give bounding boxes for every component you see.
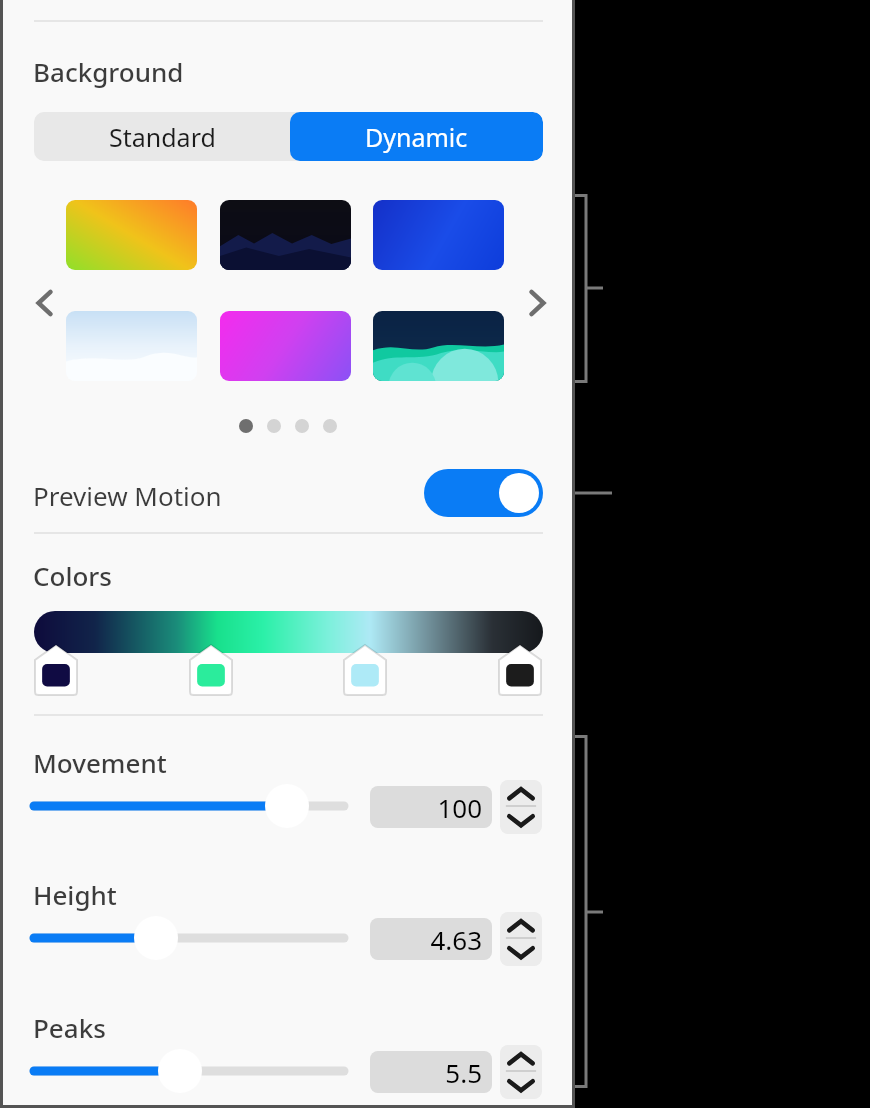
button[interactable]: Color stop [190,645,232,695]
button[interactable]: Increase Peaks [500,1045,542,1072]
button[interactable]: Color stop [35,645,77,695]
button[interactable]: Height slider [34,916,344,960]
staticText: Standard [109,120,216,154]
button[interactable]: 5.5 [370,1051,492,1093]
button[interactable]: Background style 5 [220,311,351,381]
button[interactable]: Background style 1 [66,200,197,270]
staticText: 100 [437,790,482,825]
button[interactable]: Next page [514,280,560,326]
staticText: Preview Motion [33,478,222,513]
staticText: Movement [33,745,167,780]
staticText: Height [33,877,117,912]
button[interactable]: Decrease Peaks [500,1072,542,1099]
button[interactable]: Background style 3 [373,200,504,270]
button[interactable]: Page 4 [323,419,337,433]
button[interactable]: Background style 4 [66,311,197,381]
button[interactable]: 4.63 [370,918,492,960]
button[interactable]: Increase Height [500,912,542,939]
staticText: Dynamic [365,120,468,154]
button[interactable]: Standard [34,112,290,161]
button[interactable]: Preview Motion toggle [424,469,543,517]
staticText: 4.63 [430,922,482,957]
button[interactable]: Color stop [344,645,386,695]
button[interactable]: Color stop [499,645,541,695]
button[interactable]: 100 [370,786,492,828]
button[interactable]: Decrease Height [500,939,542,966]
button[interactable]: Page 1 [239,419,253,433]
button[interactable]: Background style 2 [220,200,351,270]
button[interactable]: Page 3 [295,419,309,433]
button[interactable]: Previous page [22,280,68,326]
staticText: Peaks [33,1010,106,1045]
staticText: Colors [33,558,112,593]
button[interactable]: Increase Movement [500,780,542,807]
button[interactable]: Peaks slider [34,1049,344,1093]
button[interactable]: Decrease Movement [500,807,542,834]
button[interactable]: Page 2 [267,419,281,433]
button[interactable]: Color gradient [34,611,543,653]
staticText: 5.5 [445,1055,482,1090]
button[interactable]: Dynamic [290,112,543,161]
button[interactable]: Background style 6 [373,311,504,381]
staticText: Background [33,54,184,89]
button[interactable]: Movement slider [34,784,344,828]
